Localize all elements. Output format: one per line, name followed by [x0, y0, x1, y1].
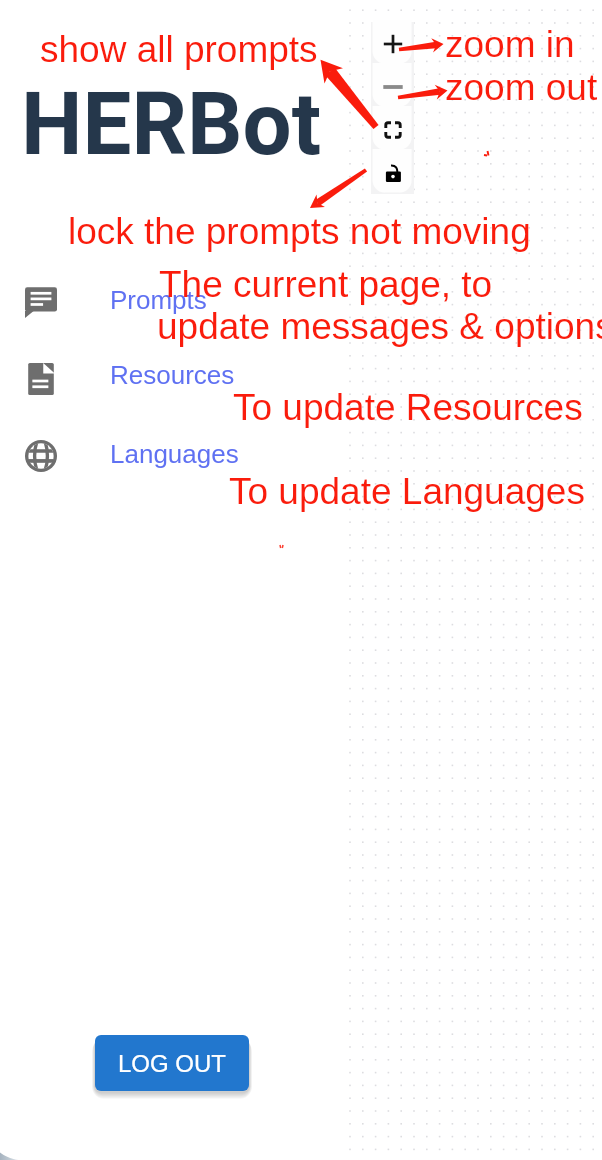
staticText: lock the prompts not moving	[68, 211, 531, 252]
staticText: update messages & options	[157, 306, 602, 347]
button[interactable]: Zoom in	[371, 22, 414, 65]
staticText: To update Languages	[229, 471, 585, 512]
staticText: zoom in	[445, 24, 575, 65]
staticText: The current page, to	[159, 264, 493, 305]
button[interactable]: Resources	[0, 356, 330, 410]
staticText: LOG OUT	[118, 1050, 227, 1077]
staticText: Prompts	[110, 285, 207, 314]
staticText: To update Resources	[233, 387, 583, 428]
staticText: show all prompts	[40, 29, 318, 70]
button[interactable]: LOG OUT	[95, 1035, 249, 1091]
staticText: HERBot	[21, 73, 322, 175]
staticText: Languages	[110, 439, 239, 468]
button[interactable]: Lock canvas	[371, 151, 414, 194]
button[interactable]: Zoom out	[371, 65, 414, 108]
button[interactable]: Prompts	[0, 280, 330, 334]
button[interactable]: Languages	[0, 434, 330, 488]
staticText: Resources	[110, 360, 235, 389]
staticText: zoom out	[445, 67, 598, 108]
button[interactable]: Fit to screen	[371, 108, 414, 151]
